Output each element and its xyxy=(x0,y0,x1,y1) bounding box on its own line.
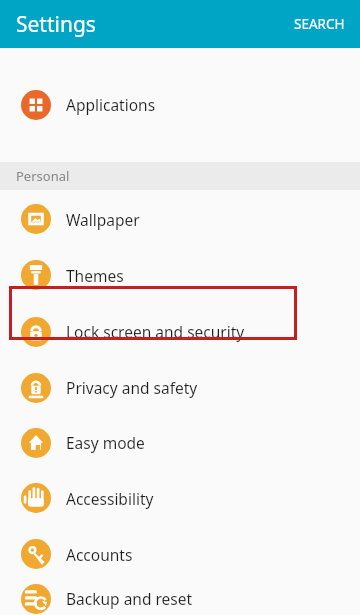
staticText: Themes xyxy=(66,265,124,286)
staticText: Backup and reset xyxy=(66,588,193,609)
staticText: Privacy and safety xyxy=(66,377,198,398)
button[interactable]: SEARCH xyxy=(279,2,360,46)
button[interactable]: Lock screen and security xyxy=(0,303,360,360)
button[interactable]: Easy mode xyxy=(0,415,360,470)
button[interactable]: Themes xyxy=(0,247,360,303)
staticText: Lock screen and security xyxy=(66,321,245,342)
staticText: Applications xyxy=(66,94,156,115)
staticText: Easy mode xyxy=(66,432,145,453)
staticText: Personal xyxy=(16,167,70,185)
staticText: Wallpaper xyxy=(66,209,140,230)
button[interactable]: Accounts xyxy=(0,526,360,582)
staticText: SEARCH xyxy=(294,15,345,33)
button[interactable]: Accessibility xyxy=(0,470,360,526)
button[interactable]: Privacy and safety xyxy=(0,360,360,415)
button[interactable]: Wallpaper xyxy=(0,191,360,247)
button[interactable]: Backup and reset xyxy=(0,582,360,615)
staticText: Settings xyxy=(16,10,96,39)
staticText: Accessibility xyxy=(66,488,154,509)
button[interactable]: Applications xyxy=(0,76,360,133)
staticText: Accounts xyxy=(66,544,133,565)
